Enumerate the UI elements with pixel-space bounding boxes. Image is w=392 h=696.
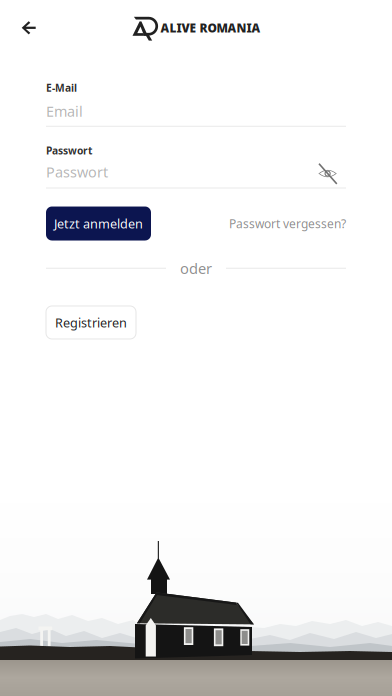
staticText: Passwort [46,144,92,157]
button[interactable]: Show password [318,162,346,181]
staticText: oder [180,258,212,278]
staticText: Passwort vergessen? [229,215,346,231]
staticText: Jetzt anmelden [54,215,143,232]
button[interactable]: Jetzt anmelden [46,206,151,240]
staticText: Passwort [46,162,108,181]
staticText: ALIVE ROMANIA [160,20,260,36]
button[interactable]: Registrieren [46,306,136,339]
button[interactable]: Passwort vergessen? [229,215,346,231]
staticText: E-Mail [46,81,77,95]
staticText: Registrieren [55,314,127,331]
staticText: Email [46,102,83,121]
button[interactable]: Back [7,6,51,50]
